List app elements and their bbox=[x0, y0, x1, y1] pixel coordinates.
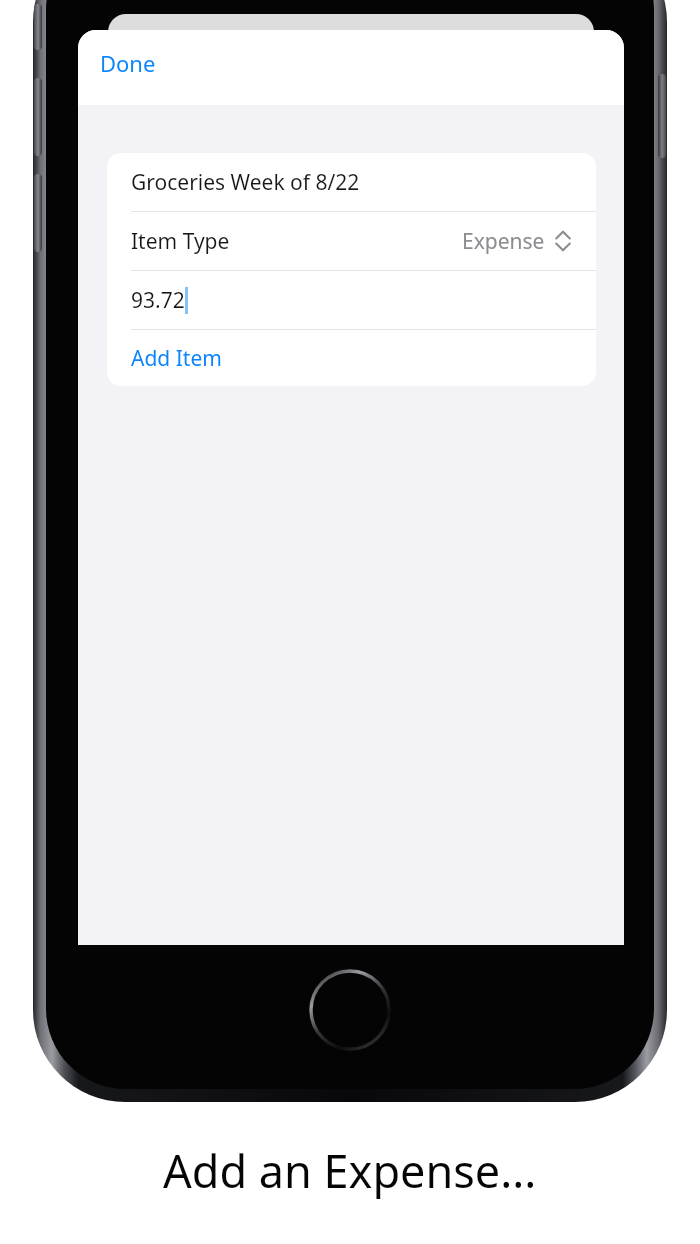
button[interactable]: Add Item bbox=[107, 330, 596, 386]
staticText: Add Item bbox=[131, 344, 222, 373]
button[interactable]: Groceries Week of 8/22 bbox=[107, 153, 596, 211]
staticText: Groceries Week of 8/22 bbox=[131, 168, 360, 197]
button[interactable]: Done bbox=[86, 39, 170, 87]
other: Home bbox=[308, 968, 392, 1052]
staticText: Done bbox=[100, 48, 156, 78]
button[interactable]: Item Type bbox=[107, 212, 596, 270]
staticText: Add an Expense... bbox=[163, 1140, 537, 1201]
staticText: Expense bbox=[462, 227, 545, 256]
other: Select item type bbox=[555, 229, 571, 253]
staticText: Item Type bbox=[131, 227, 230, 256]
staticText: 93.72 bbox=[131, 286, 185, 315]
button[interactable]: 93.72 bbox=[107, 271, 596, 329]
